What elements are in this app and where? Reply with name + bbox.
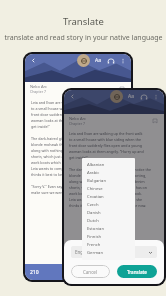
- staticText: Neko Arc: [30, 84, 47, 89]
- staticText: to a small house with blue siding when t…: [31, 106, 103, 111]
- staticText: Cancel: [83, 269, 98, 275]
- button[interactable]: Translate: [110, 90, 123, 103]
- staticText: front door suddenly flies open and a you…: [31, 112, 104, 117]
- staticText: Chapter 7: [30, 89, 47, 94]
- button[interactable]: Font size: [94, 56, 103, 65]
- staticText: Translate: [63, 15, 104, 28]
- button[interactable]: German: [82, 249, 135, 257]
- staticText: 210: [30, 269, 39, 276]
- button[interactable]: Bulgarian: [82, 177, 135, 185]
- button[interactable]: Estonian: [82, 225, 135, 233]
- staticText: Neko Arc: [69, 116, 86, 121]
- staticText: work boots which only accentuate the loo…: [31, 160, 104, 165]
- staticText: Dutch: [87, 218, 99, 224]
- button[interactable]: Bookmark: [151, 117, 159, 125]
- staticText: Danish: [87, 210, 101, 216]
- staticText: woman looks at them angrily. "Hurry up a…: [31, 118, 106, 123]
- button[interactable]: Translate: [77, 54, 90, 67]
- staticText: Leia wants to compliment her on it, but …: [69, 197, 143, 202]
- button[interactable]: Arabic: [82, 169, 135, 177]
- staticText: English: [75, 249, 91, 255]
- button[interactable]: Chinese: [82, 185, 135, 193]
- button[interactable]: French: [82, 241, 135, 249]
- button[interactable]: More options: [151, 92, 160, 101]
- staticText: Albanian: [87, 162, 105, 168]
- staticText: Chinese: [87, 186, 103, 192]
- staticText: Aa: [128, 93, 135, 100]
- button[interactable]: More options: [118, 56, 127, 65]
- staticText: Bulgarian: [87, 178, 107, 184]
- staticText: Croatian: [87, 194, 104, 200]
- staticText: Leia and Evan are walking up the front w…: [31, 100, 105, 105]
- staticText: shorts, which just adds to her vibe. She…: [69, 185, 147, 190]
- staticText: Aa: [95, 57, 102, 64]
- button[interactable]: Dutch: [82, 217, 135, 225]
- button[interactable]: Cancel: [71, 265, 110, 278]
- button[interactable]: Back: [68, 92, 77, 101]
- staticText: make sure we weren't followed." The woma…: [31, 190, 107, 195]
- button[interactable]: Listen: [139, 92, 148, 101]
- staticText: along with nothing but a tank top and de…: [69, 179, 145, 184]
- staticText: Arabic: [87, 170, 100, 176]
- staticText: "Sorry V." Evan says as he steps inside,…: [31, 184, 112, 189]
- staticText: The dark-haired girl just can't help but…: [69, 167, 152, 172]
- staticText: Chapter 7: [69, 121, 86, 126]
- button[interactable]: Listen: [106, 56, 115, 65]
- staticText: Czech: [87, 202, 99, 208]
- staticText: Translate: [127, 269, 147, 275]
- staticText: French: [87, 242, 101, 248]
- staticText: blonde mohawk the other woman is sportin…: [69, 173, 147, 178]
- staticText: The dark-haired girl just can't help but…: [31, 136, 114, 141]
- staticText: front door suddenly flies open and a you…: [69, 143, 142, 148]
- staticText: Leia wants to compliment her on it, but …: [31, 166, 105, 171]
- staticText: Leia and Evan are walking up the front w…: [69, 131, 143, 136]
- staticText: woman looks at them angrily. "Hurry up a…: [69, 149, 144, 154]
- button[interactable]: Bookmark: [118, 85, 126, 93]
- staticText: German: [87, 250, 103, 256]
- staticText: shorts, which just adds to her vibe. She…: [31, 154, 109, 159]
- button[interactable]: Danish: [82, 209, 135, 217]
- staticText: Finnish: [87, 234, 102, 240]
- button[interactable]: 210: [25, 264, 131, 280]
- staticText: Estonian: [87, 226, 104, 232]
- staticText: get inside!": [31, 124, 50, 129]
- button[interactable]: Finnish: [82, 233, 135, 241]
- staticText: thinks it best to keep her mouth shut fo…: [31, 172, 109, 177]
- button[interactable]: Croatian: [82, 193, 135, 201]
- staticText: work boots which only accentuate the loo…: [69, 191, 142, 196]
- button[interactable]: Czech: [82, 201, 135, 209]
- staticText: get inside!": [69, 155, 88, 160]
- button[interactable]: English: [71, 246, 157, 258]
- button[interactable]: Font size: [127, 92, 136, 101]
- staticText: thinks it best to keep her mouth shut fo…: [69, 203, 147, 208]
- button[interactable]: Back: [29, 56, 38, 65]
- staticText: translate and read story in your native …: [4, 33, 163, 43]
- staticText: along with nothing but a tank top and de…: [31, 148, 107, 153]
- staticText: to a small house with blue siding when t…: [69, 137, 141, 142]
- button[interactable]: Translate: [117, 265, 157, 278]
- staticText: blonde mohawk the other woman is sportin…: [31, 142, 109, 147]
- button[interactable]: Albanian: [82, 161, 135, 169]
